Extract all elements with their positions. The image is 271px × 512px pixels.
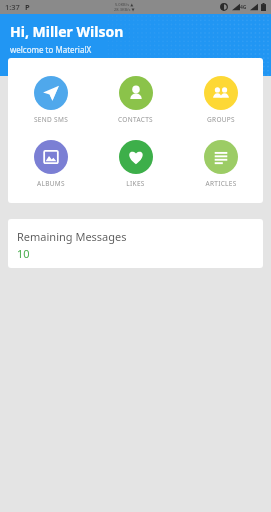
staticText: Hi, Miller Wilson [10, 22, 124, 41]
staticText: P [25, 2, 30, 12]
staticText: SEND SMS [34, 115, 68, 124]
staticText: 5.0KB/s ▲ [115, 2, 134, 7]
staticText: 10 [17, 246, 30, 261]
staticText: 1:37 [5, 2, 20, 12]
button[interactable]: ARTICLES [178, 138, 263, 190]
staticText: CONTACTS [118, 115, 153, 124]
button[interactable]: SEND SMS [8, 74, 93, 126]
staticText: ARTICLES [205, 179, 237, 188]
button[interactable]: CONTACTS [93, 74, 178, 126]
staticText: LIKES [126, 179, 145, 188]
staticText: GROUPS [207, 115, 235, 124]
button[interactable]: LIKES [93, 138, 178, 190]
staticText: welcome to MaterialX [10, 44, 92, 55]
staticText: 28.3KB/s ▼ [114, 7, 135, 12]
staticText: Remaining Messages [17, 229, 127, 244]
staticText: ALBUMS [37, 179, 65, 188]
button[interactable]: ALBUMS [8, 138, 93, 190]
button[interactable]: GROUPS [178, 74, 263, 126]
staticText: 4G [240, 4, 247, 11]
button[interactable]: Remaining Messages [8, 219, 263, 268]
